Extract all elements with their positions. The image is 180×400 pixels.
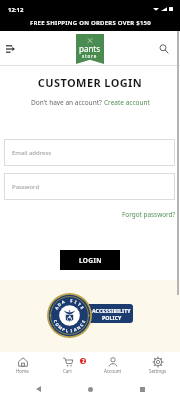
button[interactable]: Password — [4, 173, 175, 200]
button[interactable]: Cart — [45, 352, 90, 378]
button[interactable]: Recent apps — [136, 383, 148, 395]
button[interactable]: Back — [32, 383, 44, 395]
staticText: Password — [12, 183, 40, 191]
button[interactable]: LOGIN — [60, 250, 120, 270]
staticText: POLICY — [102, 314, 122, 321]
staticText: Forgot password? — [122, 210, 176, 219]
staticText: Cart — [63, 368, 72, 374]
button[interactable]: Menu — [0, 39, 20, 59]
button[interactable]: Account — [90, 352, 135, 378]
button[interactable]: Home — [0, 352, 45, 378]
button[interactable]: Forgot password? — [122, 210, 176, 219]
button[interactable]: Email address — [4, 139, 175, 166]
button[interactable]: Create account — [104, 98, 150, 107]
staticText: Don't have an account? — [31, 98, 104, 107]
button[interactable]: Settings — [135, 352, 180, 378]
staticText: Account — [104, 368, 122, 374]
staticText: ACCESSIBILITY — [92, 307, 131, 314]
button[interactable]: Home — [84, 383, 96, 395]
staticText: FREE SHIPPING ON ORDERS OVER $150 — [30, 19, 151, 27]
staticText: Home — [16, 368, 29, 374]
staticText: store — [82, 53, 98, 59]
button[interactable]: ADA Site Compliance — [47, 293, 92, 338]
staticText: Email address — [12, 149, 52, 157]
button[interactable]: Search — [152, 37, 176, 61]
staticText: Create account — [104, 98, 150, 107]
staticText: LOGIN — [79, 256, 102, 265]
staticText: 12:12 — [8, 6, 24, 14]
button[interactable]: pants store logo — [76, 34, 104, 64]
staticText: 2 — [82, 358, 85, 364]
staticText: Settings — [149, 368, 167, 374]
staticText: CUSTOMER LOGIN — [0, 75, 180, 90]
staticText: pants — [79, 43, 101, 54]
button[interactable]: ACCESSIBILITY — [62, 304, 133, 323]
